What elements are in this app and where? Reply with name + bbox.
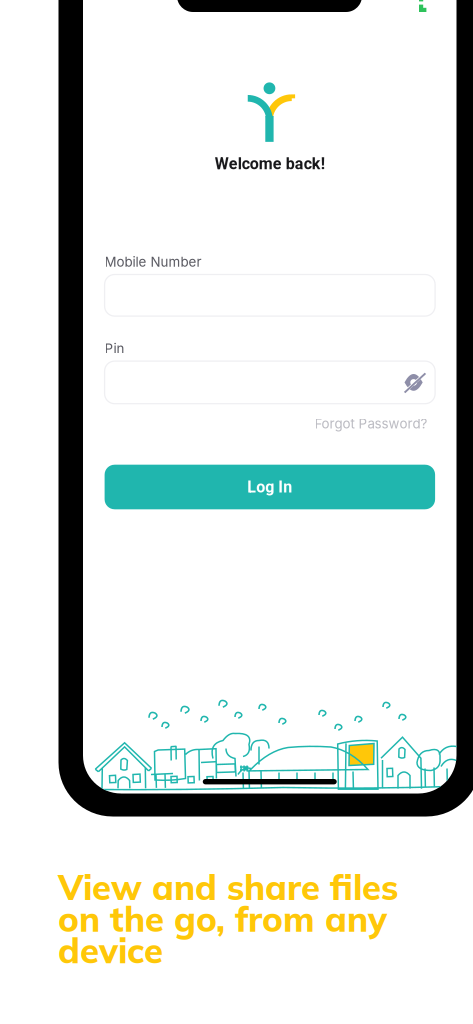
- button[interactable]: Log In: [105, 465, 435, 509]
- staticText: View and share files: [58, 865, 398, 909]
- staticText: on the go, from any: [58, 897, 387, 940]
- button[interactable]: Forgot Password?: [315, 417, 428, 431]
- staticText: Forgot Password?: [315, 416, 428, 432]
- staticText: device: [58, 928, 163, 972]
- staticText: Log In: [247, 478, 292, 496]
- staticText: Welcome back!: [215, 154, 325, 173]
- staticText: Mobile Number: [105, 254, 202, 270]
- staticText: Pin: [105, 340, 125, 357]
